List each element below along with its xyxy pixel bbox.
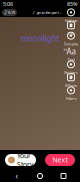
button[interactable]: Effects [63, 74, 79, 87]
staticText: Text [67, 57, 74, 62]
staticText: ‹ [15, 171, 17, 181]
button[interactable]: Back [9, 170, 23, 182]
button[interactable]: Edit [63, 22, 79, 35]
staticText: 85% [67, 0, 77, 8]
button[interactable]: Recents [56, 170, 70, 182]
staticText: Edit [68, 31, 74, 36]
button[interactable]: Home [33, 170, 47, 182]
staticText: ♪ go to the part ... [32, 10, 62, 15]
button[interactable]: Settings [63, 9, 79, 22]
staticText: 0:15 [8, 10, 15, 15]
staticText: Settings [64, 18, 77, 23]
button[interactable]: Your Story [5, 154, 36, 166]
button[interactable]: Templates [63, 35, 79, 48]
staticText: Stickers [64, 70, 78, 75]
staticText: Filters [65, 96, 76, 101]
button[interactable]: Next [45, 154, 75, 166]
button[interactable]: ♪ go to the part ... [30, 9, 64, 16]
staticText: Aa [66, 46, 75, 57]
staticText: 5:06 [3, 0, 13, 8]
button[interactable]: ♪ [2, 9, 17, 16]
button[interactable]: Stickers [63, 61, 79, 74]
staticText: Templates [63, 41, 78, 52]
staticText: ♪ [4, 9, 7, 16]
button[interactable]: Filters [63, 87, 79, 100]
button[interactable]: Aa [63, 48, 79, 61]
staticText: moonlight [20, 33, 59, 44]
staticText: Effects [65, 83, 77, 88]
staticText: Next [52, 156, 67, 164]
staticText: Your Story [17, 151, 33, 169]
